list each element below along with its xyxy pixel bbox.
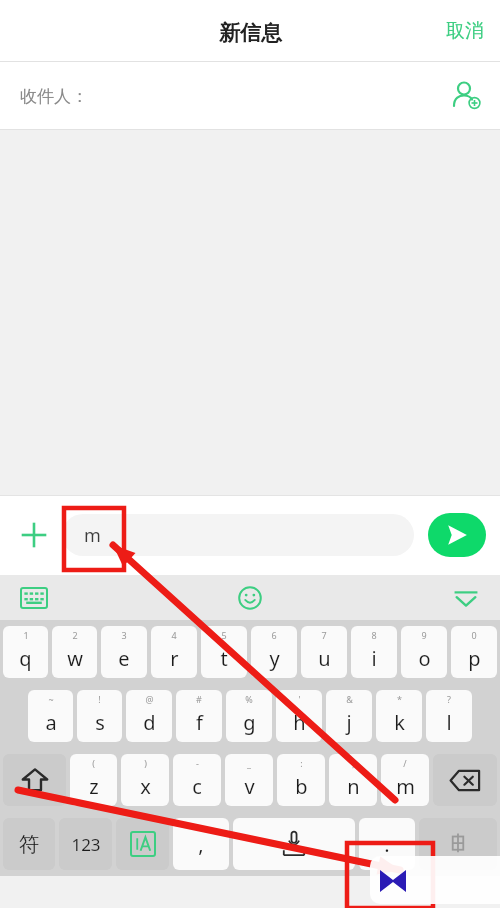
button[interactable]: 5: [201, 626, 247, 678]
staticText: k: [394, 709, 405, 736]
staticText: 123: [71, 833, 101, 856]
button[interactable]: 6: [251, 626, 297, 678]
staticText: r: [170, 645, 179, 672]
staticText: 2: [72, 629, 78, 641]
button[interactable]: :: [277, 754, 325, 806]
button[interactable]: Keyboard: [14, 578, 54, 618]
staticText: u: [318, 645, 331, 672]
button[interactable]: ): [121, 754, 169, 806]
staticText: v: [244, 773, 255, 800]
staticText: x: [140, 773, 151, 800]
button[interactable]: Space / voice input: [233, 818, 355, 870]
staticText: p: [468, 645, 481, 672]
button[interactable]: Emoji: [230, 578, 270, 618]
staticText: t: [220, 645, 228, 672]
staticText: ): [144, 757, 147, 769]
staticText: (: [92, 757, 95, 769]
other: Backspace: [450, 770, 480, 791]
button[interactable]: Add contact: [450, 79, 484, 113]
staticText: 7: [321, 629, 327, 641]
staticText: s: [95, 709, 105, 736]
button[interactable]: (: [70, 754, 117, 806]
staticText: 5: [221, 629, 227, 641]
button[interactable]: 0: [451, 626, 497, 678]
staticText: 1: [23, 629, 29, 641]
staticText: g: [243, 709, 256, 736]
staticText: ?: [447, 693, 451, 705]
staticText: n: [347, 773, 360, 800]
button[interactable]: Hide keyboard: [446, 578, 486, 618]
button[interactable]: @: [126, 690, 172, 742]
button[interactable]: 9: [401, 626, 447, 678]
staticText: h: [293, 709, 306, 736]
staticText: *: [397, 693, 402, 705]
button[interactable]: ': [276, 690, 322, 742]
staticText: 9: [421, 629, 427, 641]
staticText: -: [196, 757, 199, 769]
button[interactable]: 7: [301, 626, 347, 678]
staticText: 6: [271, 629, 277, 641]
button[interactable]: Enter: [419, 818, 497, 870]
staticText: ;: [352, 757, 355, 769]
staticText: @: [145, 693, 154, 705]
button[interactable]: ~: [28, 690, 73, 742]
staticText: &: [346, 693, 353, 705]
button[interactable]: &: [326, 690, 372, 742]
staticText: 3: [121, 629, 127, 641]
button[interactable]: _: [225, 754, 273, 806]
staticText: 4: [171, 629, 177, 641]
staticText: y: [269, 645, 280, 672]
button[interactable]: 8: [351, 626, 397, 678]
button[interactable]: -: [173, 754, 221, 806]
staticText: q: [19, 645, 32, 672]
button[interactable]: ?: [426, 690, 472, 742]
staticText: 取消: [446, 19, 484, 43]
button[interactable]: 1: [3, 626, 48, 678]
staticText: _: [247, 757, 251, 769]
button[interactable]: Backspace: [433, 754, 497, 806]
other: Space / voice input: [277, 830, 311, 858]
button[interactable]: 符: [3, 818, 55, 870]
staticText: :: [300, 757, 303, 769]
button[interactable]: 2: [52, 626, 97, 678]
staticText: m: [84, 523, 101, 548]
staticText: 0: [471, 629, 477, 641]
button[interactable]: *: [376, 690, 422, 742]
button[interactable]: 取消: [430, 9, 500, 53]
button[interactable]: Switch language: [116, 818, 169, 870]
button[interactable]: 3: [101, 626, 147, 678]
staticText: #: [196, 693, 202, 705]
other: Shift: [22, 768, 48, 792]
button[interactable]: Add attachment: [10, 511, 58, 559]
button[interactable]: .: [359, 818, 415, 870]
staticText: 新信息: [219, 20, 282, 46]
staticText: c: [192, 773, 202, 800]
button[interactable]: #: [176, 690, 222, 742]
button[interactable]: %: [226, 690, 272, 742]
staticText: w: [67, 645, 83, 672]
staticText: !: [98, 693, 101, 705]
staticText: %: [245, 693, 253, 705]
button[interactable]: ,: [173, 818, 229, 870]
button[interactable]: Send: [428, 513, 486, 557]
staticText: 8: [371, 629, 377, 641]
staticText: l: [446, 709, 452, 736]
staticText: .: [384, 831, 390, 858]
button[interactable]: Shift: [3, 754, 66, 806]
staticText: a: [45, 709, 57, 736]
staticText: /: [403, 757, 407, 769]
button[interactable]: m: [62, 514, 414, 556]
staticText: e: [118, 645, 130, 672]
button[interactable]: 123: [59, 818, 112, 870]
staticText: j: [346, 709, 352, 736]
staticText: 符: [19, 832, 39, 857]
button[interactable]: 4: [151, 626, 197, 678]
button[interactable]: 收件人：: [0, 62, 500, 130]
staticText: i: [371, 645, 377, 672]
button[interactable]: /: [381, 754, 429, 806]
staticText: m: [396, 773, 415, 800]
other: Enter: [447, 833, 469, 855]
staticText: f: [196, 709, 203, 736]
button[interactable]: ;: [329, 754, 377, 806]
button[interactable]: !: [77, 690, 122, 742]
